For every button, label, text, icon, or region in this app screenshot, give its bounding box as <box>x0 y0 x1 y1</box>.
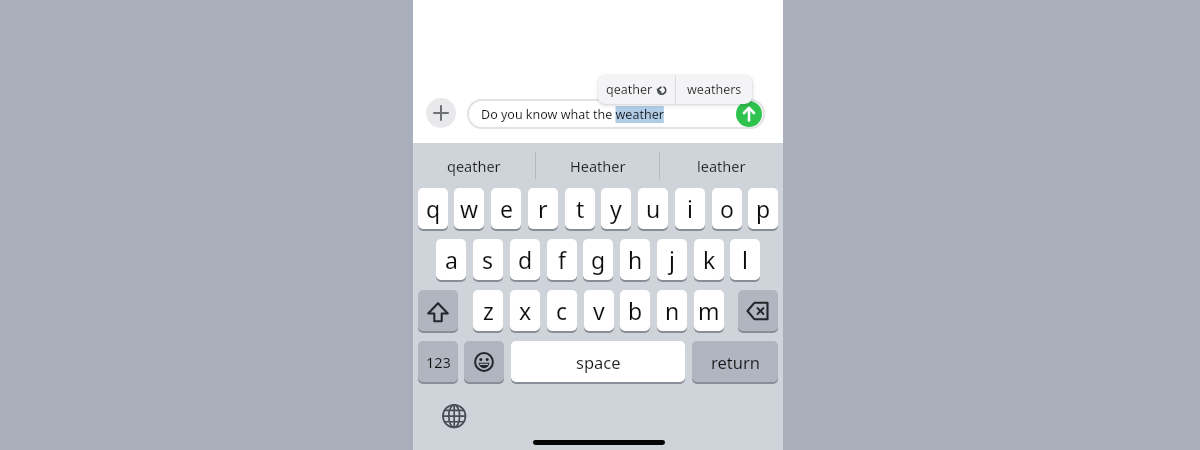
staticText: Do you know what the weather <box>481 106 664 123</box>
staticText: k <box>703 244 716 275</box>
staticText: j <box>669 244 675 275</box>
button[interactable]: h <box>620 239 650 280</box>
button[interactable]: w <box>454 188 484 229</box>
button[interactable]: space <box>511 341 685 382</box>
button[interactable] <box>464 341 504 382</box>
button[interactable] <box>440 402 468 430</box>
staticText: r <box>538 193 548 224</box>
button[interactable]: 123 <box>418 341 458 382</box>
button[interactable]: d <box>510 239 540 280</box>
staticText: h <box>628 244 643 275</box>
staticText: 123 <box>426 352 451 372</box>
staticText: leather <box>697 156 746 176</box>
staticText: m <box>698 295 720 326</box>
button[interactable]: f <box>547 239 577 280</box>
staticText: Heather <box>570 156 626 176</box>
button[interactable]: t <box>565 188 595 229</box>
button[interactable]: j <box>657 239 687 280</box>
staticText: t <box>576 193 585 224</box>
staticText: o <box>720 193 734 224</box>
button[interactable]: s <box>473 239 503 280</box>
staticText: space <box>576 351 621 373</box>
staticText: return <box>711 351 760 373</box>
button[interactable]: a <box>436 239 466 280</box>
button[interactable]: l <box>730 239 760 280</box>
button[interactable]: q <box>418 188 448 229</box>
staticText: g <box>591 244 606 275</box>
button[interactable]: c <box>547 290 577 331</box>
button[interactable]: y <box>601 188 631 229</box>
button[interactable]: o <box>712 188 742 229</box>
button[interactable]: m <box>694 290 724 331</box>
staticText: qeather <box>606 81 653 98</box>
button[interactable]: v <box>584 290 614 331</box>
button[interactable] <box>426 98 456 128</box>
staticText: f <box>558 244 566 275</box>
button[interactable]: g <box>583 239 613 280</box>
staticText: z <box>483 295 494 326</box>
staticText: e <box>500 193 513 224</box>
button[interactable]: z <box>473 290 503 331</box>
button[interactable]: u <box>638 188 668 229</box>
staticText: s <box>482 244 494 275</box>
button[interactable]: return <box>692 341 778 382</box>
staticText: q <box>426 193 441 224</box>
button[interactable]: k <box>694 239 724 280</box>
button[interactable]: weathers <box>676 75 752 104</box>
button[interactable]: r <box>528 188 558 229</box>
button[interactable]: qeather <box>598 75 675 104</box>
staticText: y <box>610 193 622 224</box>
staticText: x <box>519 295 532 326</box>
staticText: v <box>593 295 605 326</box>
button[interactable]: x <box>510 290 540 331</box>
staticText: c <box>556 295 568 326</box>
staticText: i <box>687 193 693 224</box>
staticText: n <box>665 295 680 326</box>
button[interactable]: p <box>748 188 778 229</box>
staticText: weathers <box>687 81 742 98</box>
button[interactable]: b <box>620 290 650 331</box>
button[interactable]: qeather <box>413 143 535 188</box>
staticText: w <box>460 193 479 224</box>
staticText: b <box>628 295 643 326</box>
button[interactable]: e <box>491 188 521 229</box>
staticText: l <box>742 244 748 275</box>
button[interactable]: n <box>657 290 687 331</box>
button[interactable]: Do you know what the weather <box>467 99 765 129</box>
button[interactable]: Heather <box>536 143 659 188</box>
staticText: a <box>445 244 458 275</box>
staticText: u <box>646 193 661 224</box>
staticText: d <box>518 244 533 275</box>
button[interactable] <box>736 101 762 127</box>
button[interactable]: leather <box>660 143 783 188</box>
button[interactable] <box>418 290 458 331</box>
button[interactable]: i <box>675 188 705 229</box>
staticText: qeather <box>447 156 501 176</box>
button[interactable] <box>738 290 778 331</box>
staticText: p <box>756 193 771 224</box>
